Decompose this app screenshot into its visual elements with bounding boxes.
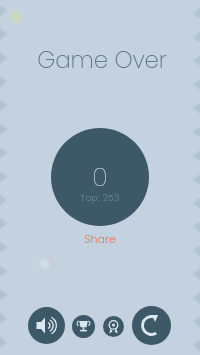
- staticText: 0: [51, 159, 149, 195]
- button[interactable]: Replay: [132, 306, 171, 345]
- staticText: Share: [84, 231, 116, 246]
- button[interactable]: Share: [74, 229, 126, 247]
- button[interactable]: Sound: [28, 307, 65, 344]
- staticText: Game Over: [37, 44, 167, 76]
- button[interactable]: Leaderboard: [72, 315, 95, 338]
- staticText: Top: 253: [51, 192, 149, 205]
- button[interactable]: Achievements: [103, 316, 124, 337]
